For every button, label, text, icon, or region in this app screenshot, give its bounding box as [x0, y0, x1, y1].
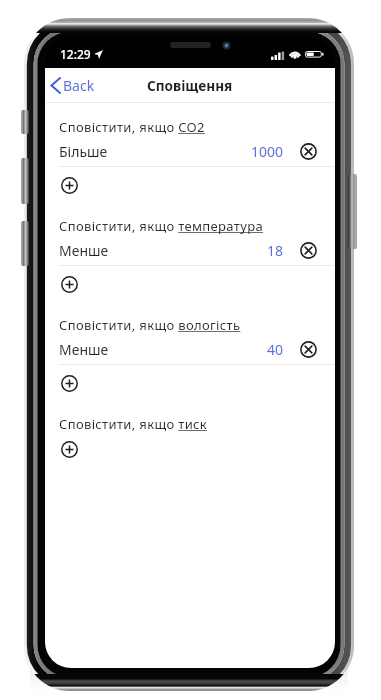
button[interactable]: Back	[50, 72, 95, 98]
staticText: 40	[267, 340, 284, 359]
button[interactable]: Менше	[45, 338, 335, 360]
button[interactable]: Менше	[45, 239, 335, 261]
button[interactable]: Add condition	[61, 441, 78, 458]
staticText: Менше	[59, 340, 109, 359]
staticText: 18	[267, 241, 284, 260]
staticText: Сповістити, якщо тиск	[59, 415, 208, 433]
button[interactable]: Add condition	[61, 177, 78, 194]
staticText: Менше	[59, 241, 109, 260]
button[interactable]: Remove condition	[300, 242, 317, 259]
staticText: Сповістити, якщо вологість	[59, 316, 241, 334]
staticText: Back	[63, 76, 95, 95]
button[interactable]: Remove condition	[300, 341, 317, 358]
staticText: Більше	[59, 142, 108, 161]
staticText: 1000	[251, 142, 284, 161]
staticText: Сповістити, якщо температура	[59, 217, 263, 235]
button[interactable]: Remove condition	[300, 143, 317, 160]
staticText: Сповістити, якщо CO2	[59, 118, 205, 136]
staticText: 12:29	[60, 46, 91, 62]
button[interactable]: Add condition	[61, 276, 78, 293]
staticText: Сповіщення	[147, 76, 233, 95]
button[interactable]: Більше	[45, 140, 335, 162]
button[interactable]: Add condition	[61, 375, 78, 392]
